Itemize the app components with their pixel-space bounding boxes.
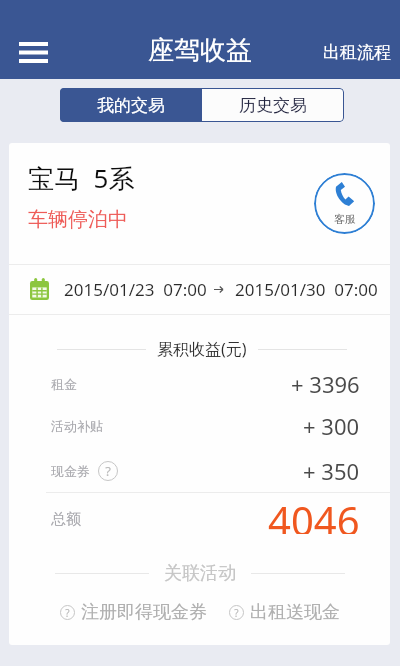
- staticText: 2015/01/30 07:00: [235, 278, 378, 301]
- staticText: 宝马 5系: [28, 160, 135, 196]
- staticText: 注册即得现金券: [81, 601, 207, 624]
- staticText: 出租流程: [323, 42, 391, 63]
- staticText: 出租送现金: [250, 601, 340, 624]
- staticText: 现金券: [51, 463, 90, 479]
- staticText: 座驾收益: [148, 34, 252, 67]
- staticText: ?: [105, 462, 111, 480]
- staticText: 4046: [268, 493, 360, 534]
- staticText: 车辆停泊中: [28, 207, 128, 232]
- staticText: 历史交易: [239, 95, 307, 116]
- staticText: + 3396: [291, 369, 360, 399]
- staticText: 总额: [51, 510, 81, 529]
- staticText: ?: [234, 606, 239, 620]
- button[interactable]: Menu: [8, 27, 58, 77]
- button[interactable]: ?: [60, 599, 207, 626]
- staticText: + 350: [303, 456, 360, 486]
- button[interactable]: 我的交易: [60, 88, 202, 122]
- button[interactable]: ?: [229, 599, 340, 626]
- staticText: 活动补贴: [51, 418, 103, 434]
- staticText: 客服: [334, 212, 356, 226]
- staticText: ?: [65, 606, 70, 620]
- staticText: 关联活动: [164, 562, 236, 585]
- button[interactable]: 宝马 5系: [9, 143, 390, 264]
- staticText: 租金: [51, 376, 77, 392]
- button[interactable]: 历史交易: [202, 88, 344, 122]
- staticText: 我的交易: [97, 95, 165, 116]
- button[interactable]: 出租流程: [323, 36, 391, 69]
- button[interactable]: 客服: [314, 173, 375, 234]
- staticText: + 300: [303, 411, 360, 441]
- staticText: 2015/01/23 07:00: [64, 278, 207, 301]
- staticText: 累积收益(元): [157, 338, 247, 360]
